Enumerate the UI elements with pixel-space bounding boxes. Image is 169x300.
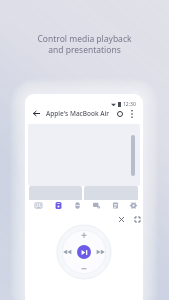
- button[interactable]: More options: [126, 108, 137, 119]
- button[interactable]: Remote: [52, 199, 64, 211]
- button[interactable]: Close: [116, 214, 127, 225]
- button[interactable]: Play pause: [77, 245, 91, 259]
- button[interactable]: Media: [90, 199, 102, 211]
- staticText: Control media playback and presentations: [37, 33, 132, 55]
- staticText: 12:30: [123, 101, 136, 108]
- button[interactable]: Mouse: [71, 199, 83, 211]
- button[interactable]: Keyboard: [32, 199, 44, 211]
- button[interactable]: Back: [31, 108, 42, 119]
- button[interactable]: Devices: [114, 108, 125, 119]
- button[interactable]: Files: [109, 199, 121, 211]
- staticText: Apple's MacBook Air: [46, 109, 110, 118]
- button[interactable]: Settings: [127, 199, 139, 211]
- button[interactable]: Expand: [132, 214, 143, 225]
